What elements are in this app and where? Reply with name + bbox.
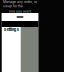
staticText: one you want bbox=[9, 9, 31, 13]
staticText: Manage any order, or swap for the bbox=[3, 0, 37, 8]
staticText: Settings bbox=[4, 27, 19, 32]
